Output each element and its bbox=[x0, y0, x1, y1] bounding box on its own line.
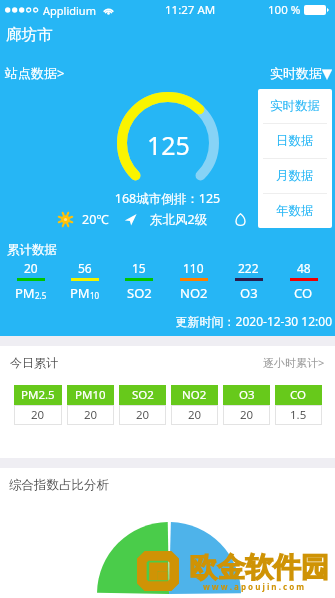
staticText: 站点数据> bbox=[5, 64, 65, 82]
staticText: 2.5 bbox=[35, 290, 47, 301]
staticText: PM bbox=[15, 284, 35, 302]
button[interactable]: 56 bbox=[58, 260, 112, 302]
staticText: 实时数据 bbox=[270, 98, 320, 114]
staticText: SO2 bbox=[127, 284, 152, 302]
staticText: 56 bbox=[78, 260, 92, 276]
other: Wind direction bbox=[124, 213, 137, 226]
staticText: 更新时间：2020-12-30 12:00 bbox=[0, 313, 332, 329]
staticText: NO2 bbox=[182, 387, 207, 403]
other: Wi-Fi bbox=[103, 6, 114, 15]
staticText: 廊坊市 bbox=[6, 25, 53, 45]
button[interactable]: 110 bbox=[166, 260, 221, 302]
button[interactable]: 222 bbox=[221, 260, 276, 302]
staticText: 110 bbox=[183, 260, 204, 276]
staticText: 168城市倒排：125 bbox=[0, 190, 335, 207]
staticText: 20 bbox=[240, 407, 254, 423]
staticText: 15 bbox=[132, 260, 146, 276]
button[interactable]: 48 bbox=[276, 260, 331, 302]
staticText: O3 bbox=[239, 387, 255, 403]
staticText: PM bbox=[70, 284, 90, 302]
staticText: 20 bbox=[84, 407, 98, 423]
staticText: 累计数据 bbox=[7, 242, 57, 258]
staticText: 今日累计 bbox=[10, 355, 58, 370]
staticText: 1.5 bbox=[290, 407, 307, 423]
staticText: Applidium bbox=[43, 3, 96, 18]
staticText: 20 bbox=[24, 260, 38, 276]
button[interactable]: PM10 bbox=[67, 385, 114, 425]
staticText: 20 bbox=[188, 407, 202, 423]
button[interactable]: 逐小时累计> bbox=[263, 355, 325, 370]
staticText: 10 bbox=[90, 290, 100, 301]
staticText: 125 bbox=[147, 128, 190, 162]
button[interactable]: O3 bbox=[223, 385, 270, 425]
button[interactable]: SO2 bbox=[119, 385, 166, 425]
staticText: 20 bbox=[136, 407, 150, 423]
button[interactable]: 年数据 bbox=[258, 194, 332, 228]
staticText: 实时数据▼ bbox=[270, 65, 332, 81]
button[interactable]: NO2 bbox=[171, 385, 218, 425]
staticText: CO bbox=[294, 284, 313, 302]
button[interactable]: 实时数据 bbox=[258, 89, 332, 123]
staticText: 月数据 bbox=[276, 168, 314, 184]
staticText: 48 bbox=[297, 260, 311, 276]
staticText: 日数据 bbox=[276, 133, 314, 149]
button[interactable]: CO bbox=[275, 385, 322, 425]
other: Weather bbox=[59, 213, 72, 226]
staticText: w w w . a p o u j i n . c o m bbox=[185, 581, 322, 592]
staticText: NO2 bbox=[180, 284, 208, 302]
staticText: 20 bbox=[31, 407, 45, 423]
button[interactable]: 站点数据> bbox=[5, 64, 65, 82]
staticText: 20℃ bbox=[82, 211, 109, 228]
button[interactable]: 15 bbox=[112, 260, 166, 302]
staticText: 11:27 AM bbox=[165, 2, 216, 18]
button[interactable]: 月数据 bbox=[258, 159, 332, 193]
staticText: CO bbox=[290, 387, 307, 403]
staticText: SO2 bbox=[132, 387, 154, 403]
button[interactable]: 20 bbox=[4, 260, 58, 302]
staticText: 欧金软件园 bbox=[189, 550, 329, 585]
button[interactable]: PM2.5 bbox=[14, 385, 62, 425]
staticText: 综合指数占比分析 bbox=[9, 477, 109, 493]
button[interactable]: 实时数据▼ bbox=[270, 65, 332, 81]
staticText: 年数据 bbox=[276, 203, 314, 219]
staticText: PM2.5 bbox=[21, 387, 55, 403]
staticText: O3 bbox=[240, 284, 258, 302]
other: Humidity bbox=[234, 213, 247, 226]
staticText: 222 bbox=[238, 260, 259, 276]
staticText: PM10 bbox=[75, 387, 106, 403]
staticText: 100 % bbox=[268, 2, 301, 18]
staticText: 东北风2级 bbox=[150, 211, 208, 228]
button[interactable]: 日数据 bbox=[258, 124, 332, 158]
staticText: 逐小时累计> bbox=[263, 355, 325, 370]
